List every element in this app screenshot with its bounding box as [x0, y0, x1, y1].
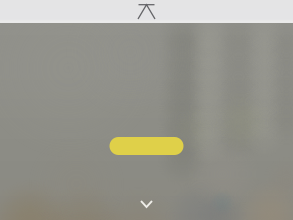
button[interactable]: Record: [109, 137, 183, 155]
button[interactable]: Next page: [124, 192, 168, 216]
button[interactable]: Previous page: [124, 0, 168, 23]
